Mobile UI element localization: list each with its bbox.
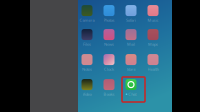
staticText: News	[104, 42, 114, 47]
staticText: Mail	[127, 42, 135, 47]
button[interactable]: Books	[98, 79, 120, 97]
staticText: Maps	[148, 42, 158, 47]
button[interactable]: Mail	[120, 29, 142, 47]
button[interactable]: Photos	[98, 5, 120, 23]
button[interactable]: Safari	[120, 5, 142, 23]
staticText: Camera	[79, 18, 94, 23]
staticText: Books	[103, 92, 114, 97]
staticText: Safari	[126, 18, 136, 23]
button[interactable]: Notes	[76, 54, 98, 72]
staticText: Chat	[128, 92, 136, 97]
button[interactable]: Files	[76, 29, 98, 47]
staticText: Photos	[103, 18, 114, 23]
button[interactable]: Store	[120, 54, 142, 72]
button[interactable]: Camera	[76, 5, 98, 23]
staticText: Video	[82, 92, 91, 97]
staticText: Clock	[104, 67, 114, 72]
staticText: Notes	[82, 67, 92, 72]
staticText: Store	[126, 67, 135, 72]
button[interactable]: Chat	[120, 79, 142, 97]
staticText: Music	[147, 18, 158, 23]
button[interactable]: Music	[142, 5, 164, 23]
staticText: Files	[83, 42, 91, 47]
staticText: Health	[147, 67, 158, 72]
button[interactable]: News	[98, 29, 120, 47]
button[interactable]: Health	[142, 54, 164, 72]
button[interactable]: Video	[76, 79, 98, 97]
button[interactable]: Maps	[142, 29, 164, 47]
button[interactable]: Clock	[98, 54, 120, 72]
